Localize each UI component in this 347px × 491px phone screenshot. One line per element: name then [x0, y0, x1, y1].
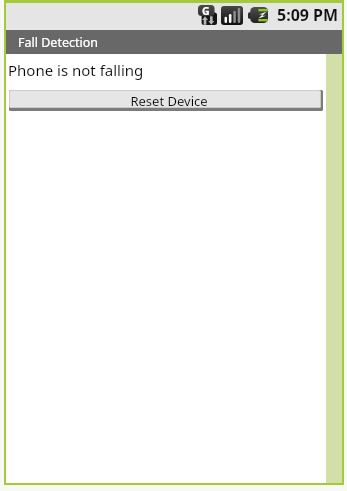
staticText: Fall Detection — [18, 34, 98, 51]
staticText: G — [202, 4, 210, 18]
button[interactable]: Reset Device — [9, 90, 323, 111]
staticText: Reset Device — [130, 92, 208, 110]
staticText: Phone is not falling — [8, 60, 144, 80]
staticText: 5:09 PM — [277, 4, 339, 26]
other: Mobile signal strength — [221, 6, 243, 25]
other: GPRS data transfer — [198, 5, 217, 25]
other: Battery charging — [248, 7, 268, 23]
